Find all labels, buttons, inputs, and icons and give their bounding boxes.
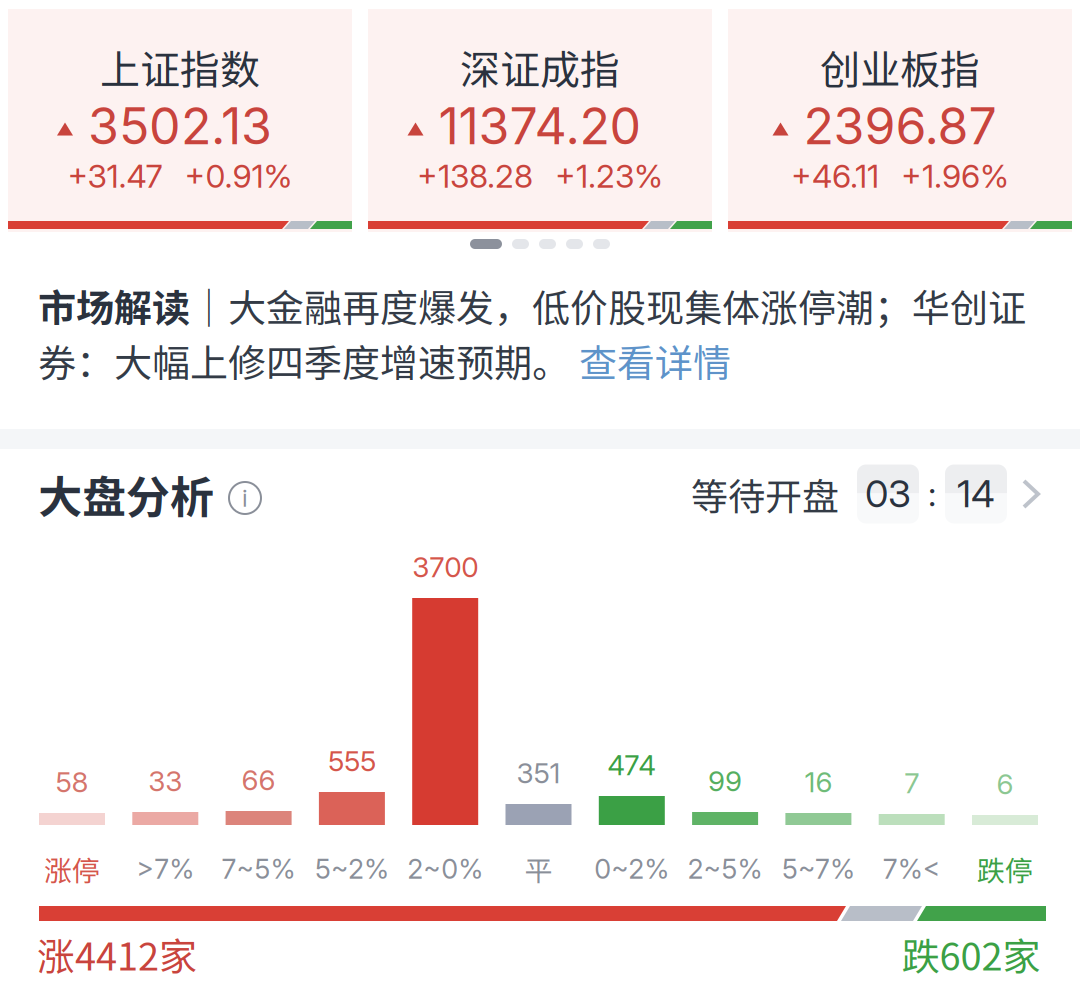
- staticText: 3700: [412, 550, 478, 584]
- staticText: 上证指数: [100, 38, 260, 96]
- staticText: 跌停: [977, 849, 1033, 889]
- button[interactable]: 创业板指: [728, 9, 1072, 232]
- staticText: 14: [957, 470, 995, 516]
- staticText: 创业板指: [820, 38, 980, 96]
- staticText: 涨停: [44, 849, 100, 889]
- staticText: 2~5%: [688, 853, 763, 885]
- staticText: +1.23%: [555, 157, 663, 195]
- staticText: :: [928, 473, 936, 514]
- staticText: 555: [328, 744, 376, 778]
- staticText: 7~5%: [222, 853, 296, 885]
- button[interactable]: 上证指数: [8, 9, 352, 232]
- staticText: 查看详情: [579, 333, 731, 388]
- staticText: 66: [242, 763, 276, 797]
- button[interactable]: 深证成指: [368, 9, 712, 232]
- staticText: 351: [516, 756, 560, 790]
- staticText: >7%: [136, 853, 194, 885]
- staticText: 3502.13: [88, 96, 272, 156]
- staticText: +31.47: [67, 157, 162, 195]
- staticText: +138.28: [417, 157, 533, 195]
- staticText: +46.11: [791, 157, 879, 195]
- staticText: i: [242, 483, 248, 512]
- button[interactable]: 市场解读: [38, 278, 1048, 408]
- staticText: 2~0%: [407, 853, 483, 885]
- button[interactable]: 等待开盘: [691, 459, 1041, 529]
- staticText: 99: [708, 764, 742, 798]
- staticText: ｜大金融再度爆发，低价股现集体涨停潮；华创证: [190, 278, 1026, 333]
- staticText: 跌602家: [901, 926, 1040, 981]
- staticText: 16: [804, 765, 832, 799]
- staticText: 0~2%: [594, 853, 669, 885]
- staticText: 等待开盘: [691, 467, 839, 521]
- staticText: 深证成指: [460, 38, 620, 96]
- staticText: 涨4412家: [37, 926, 197, 981]
- staticText: 7%<: [883, 853, 941, 885]
- staticText: 11374.20: [438, 96, 641, 156]
- staticText: 474: [607, 748, 656, 782]
- staticText: 2396.87: [803, 96, 996, 156]
- staticText: 平: [524, 849, 552, 889]
- staticText: 5~7%: [782, 853, 855, 885]
- staticText: 03: [865, 470, 911, 516]
- staticText: 市场解读: [38, 278, 190, 333]
- staticText: +0.91%: [184, 157, 292, 195]
- staticText: +1.96%: [901, 157, 1009, 195]
- staticText: 33: [148, 764, 182, 798]
- staticText: 大盘分析: [38, 462, 214, 526]
- staticText: 58: [55, 765, 88, 799]
- staticText: 5~2%: [315, 853, 389, 885]
- staticText: 6: [996, 767, 1013, 801]
- staticText: 7: [904, 766, 919, 800]
- staticText: 券：大幅上修四季度增速预期。: [38, 333, 579, 388]
